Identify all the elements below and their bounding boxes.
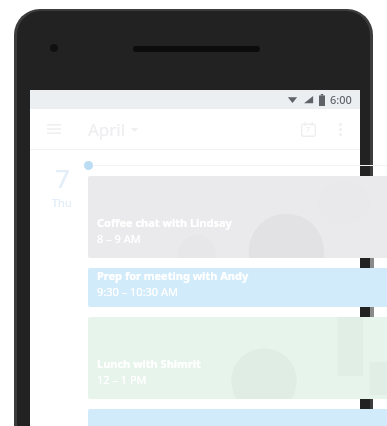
staticText: Lunch with Shimrit (97, 356, 201, 371)
staticText: 12 – 1 PM (97, 372, 147, 387)
staticText: 6:00 (330, 92, 352, 107)
staticText: Prep for meeting with Andy (97, 268, 249, 283)
button[interactable]: Open navigation drawer (38, 113, 70, 145)
staticText: 9:30 – 10:30 AM (97, 284, 179, 299)
button[interactable]: Go to today (292, 113, 324, 145)
button[interactable]: Prep for meeting with Andy (88, 268, 387, 307)
staticText: Thu (52, 195, 72, 210)
staticText: 7 (55, 160, 70, 195)
staticText: 8 – 9 AM (97, 231, 141, 246)
staticText: April (88, 118, 126, 141)
button[interactable]: Coffee chat with Lindsay (88, 176, 387, 258)
button[interactable]: April (82, 112, 144, 147)
staticText: 7 (306, 125, 311, 135)
staticText: Coffee chat with Lindsay (97, 215, 232, 230)
button[interactable]: Lunch with Shimrit (88, 317, 387, 399)
